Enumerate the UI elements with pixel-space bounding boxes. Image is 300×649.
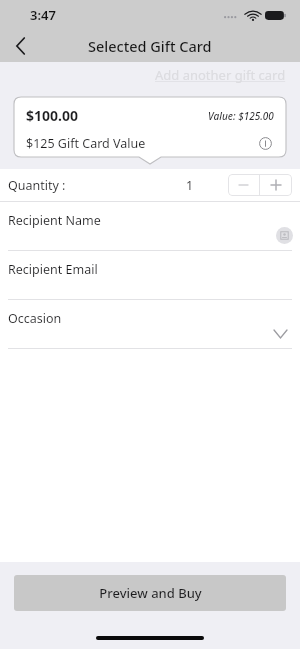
button[interactable]: $100.00 [14,97,286,157]
button[interactable]: More information [256,134,274,152]
button[interactable]: Choose contact [274,225,294,245]
staticText: Quantity : [8,177,66,194]
staticText: Recipient Name [8,212,101,229]
staticText: 3:47 [30,6,56,24]
staticText: Recipient Email [8,261,98,278]
button[interactable]: Recipient Email [0,251,300,299]
staticText: Selected Gift Card [88,36,212,56]
staticText: $125 Gift Card Value [26,135,146,152]
staticText: $100.00 [26,106,78,125]
button[interactable]: Back [0,30,40,62]
button[interactable]: Occasion [0,300,300,348]
button[interactable]: Preview and Buy [14,575,286,611]
button[interactable]: Recipient Name [0,202,300,250]
staticText: Occasion [8,310,62,327]
button[interactable]: Increase quantity [260,174,292,196]
button[interactable]: Add another gift card [155,66,286,84]
button[interactable]: Decrease quantity [228,174,259,196]
staticText: 1 [186,177,194,194]
staticText: Preview and Buy [99,584,202,602]
button[interactable]: Select occasion [270,324,290,344]
staticText: Value: $125.00 [208,109,274,123]
